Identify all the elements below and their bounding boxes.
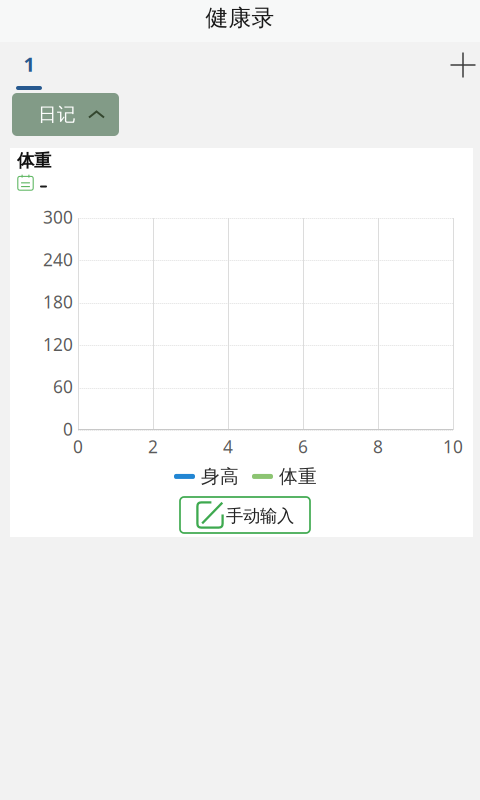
staticText: 120 [43,333,73,356]
staticText: 6 [298,435,308,458]
staticText: 2 [148,435,158,458]
button[interactable]: 手动输入 [180,497,310,533]
button[interactable]: 日记 [12,93,119,136]
staticText: 体重 [279,465,317,488]
staticText: 10 [443,435,463,458]
staticText: 体重 [17,150,51,171]
staticText: 日记 [38,103,76,126]
staticText: 180 [43,290,73,313]
staticText: 0 [63,417,73,440]
staticText: 1 [23,51,34,77]
staticText: 健康录 [205,4,274,32]
staticText: 0 [73,435,83,458]
staticText: 手动输入 [226,505,294,527]
staticText: 8 [373,435,383,458]
staticText: 60 [53,375,73,398]
staticText: 4 [223,435,233,458]
staticText: 300 [43,205,73,228]
staticText: 身高 [201,465,239,488]
button[interactable]: Add [440,44,480,86]
staticText: 240 [43,248,73,271]
button[interactable]: 1 [0,54,58,90]
